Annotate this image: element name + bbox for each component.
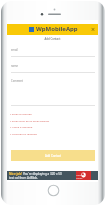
staticText: * Name is required <box>10 125 33 128</box>
staticText: * Email is required <box>10 112 32 115</box>
staticText: name <box>11 64 18 68</box>
staticText: email <box>11 48 18 52</box>
staticText: You're displaying a 320 x 50 <box>23 172 62 176</box>
staticText: × <box>91 25 96 34</box>
staticText: Add Contact <box>45 154 62 158</box>
button[interactable]: Advertisement <box>76 171 91 180</box>
staticText: Add Contact <box>7 37 98 41</box>
staticText: AdMob by Google <box>76 174 91 179</box>
staticText: WpMobileApp <box>36 25 78 33</box>
staticText: Nice job! <box>9 172 23 176</box>
staticText: Comment <box>11 79 24 83</box>
staticText: * Comment is required <box>10 132 37 135</box>
button[interactable]: Add Contact <box>11 150 95 161</box>
staticText: test ad from AdMob. <box>9 176 38 180</box>
staticText: * Email must be an email address <box>10 119 50 122</box>
button[interactable]: Close <box>89 25 98 34</box>
